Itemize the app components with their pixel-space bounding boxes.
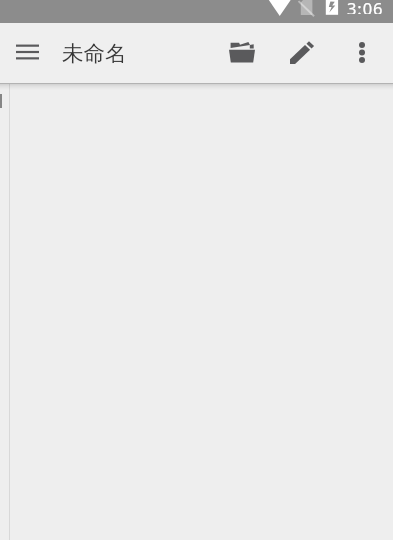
button[interactable]: Edit <box>278 30 326 78</box>
button[interactable]: Navigation menu <box>3 27 51 75</box>
staticText: 未命名 <box>62 40 127 67</box>
button[interactable]: Open folder <box>218 30 266 78</box>
button[interactable]: More options <box>338 28 386 76</box>
staticText: 3:06 <box>347 0 384 14</box>
